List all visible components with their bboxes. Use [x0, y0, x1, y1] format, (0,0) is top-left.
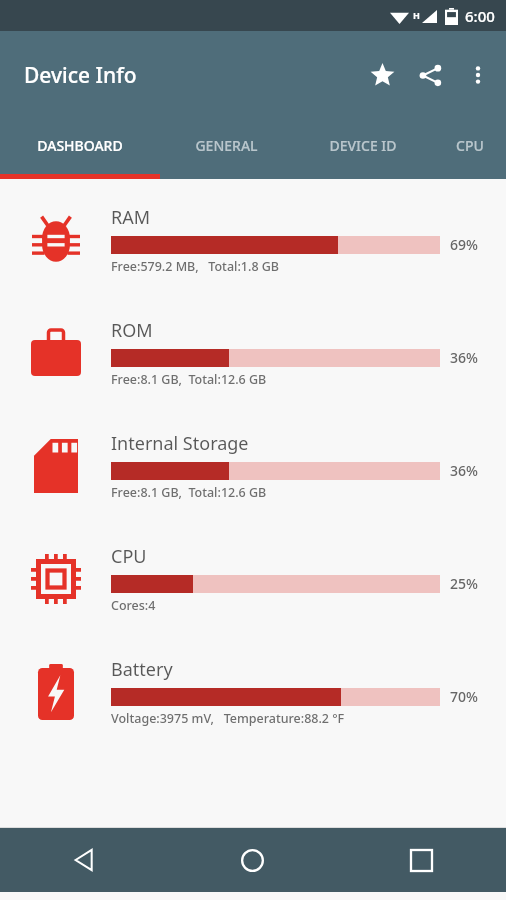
button[interactable]: Internal Storage: [0, 409, 506, 522]
staticText: CPU: [456, 136, 484, 155]
button[interactable]: More options: [454, 51, 502, 99]
staticText: CPU: [111, 544, 147, 569]
staticText: Free:8.1 GB, Total:12.6 GB: [111, 484, 267, 501]
staticText: 25%: [450, 574, 478, 593]
staticText: Internal Storage: [111, 431, 249, 456]
button[interactable]: CPU: [0, 522, 506, 635]
staticText: 69%: [450, 235, 478, 254]
staticText: H: [413, 9, 420, 21]
staticText: 36%: [450, 461, 478, 480]
button[interactable]: Home: [168, 828, 337, 892]
staticText: 36%: [450, 348, 478, 367]
button[interactable]: Battery: [0, 635, 506, 748]
staticText: Voltage:3975 mV, Temperature:88.2 °F: [111, 710, 345, 727]
staticText: DASHBOARD: [37, 136, 123, 155]
staticText: Device Info: [24, 61, 137, 90]
button[interactable]: GENERAL: [160, 119, 292, 179]
button[interactable]: RAM: [0, 183, 506, 296]
button[interactable]: Back: [0, 828, 168, 892]
button[interactable]: Recent apps: [337, 828, 506, 892]
staticText: DEVICE ID: [329, 136, 397, 155]
staticText: ROM: [111, 318, 153, 343]
staticText: 70%: [450, 687, 478, 706]
button[interactable]: CPU: [434, 119, 506, 179]
staticText: Cores:4: [111, 597, 156, 614]
button[interactable]: DEVICE ID: [292, 119, 434, 179]
staticText: Battery: [111, 657, 173, 682]
button[interactable]: DASHBOARD: [0, 119, 160, 179]
staticText: GENERAL: [195, 136, 258, 155]
button[interactable]: ROM: [0, 296, 506, 409]
staticText: 6:00: [465, 6, 495, 26]
staticText: Free:8.1 GB, Total:12.6 GB: [111, 371, 267, 388]
staticText: Free:579.2 MB, Total:1.8 GB: [111, 258, 280, 275]
staticText: RAM: [111, 205, 151, 230]
button[interactable]: Favorite: [358, 51, 406, 99]
button[interactable]: Share: [406, 51, 454, 99]
